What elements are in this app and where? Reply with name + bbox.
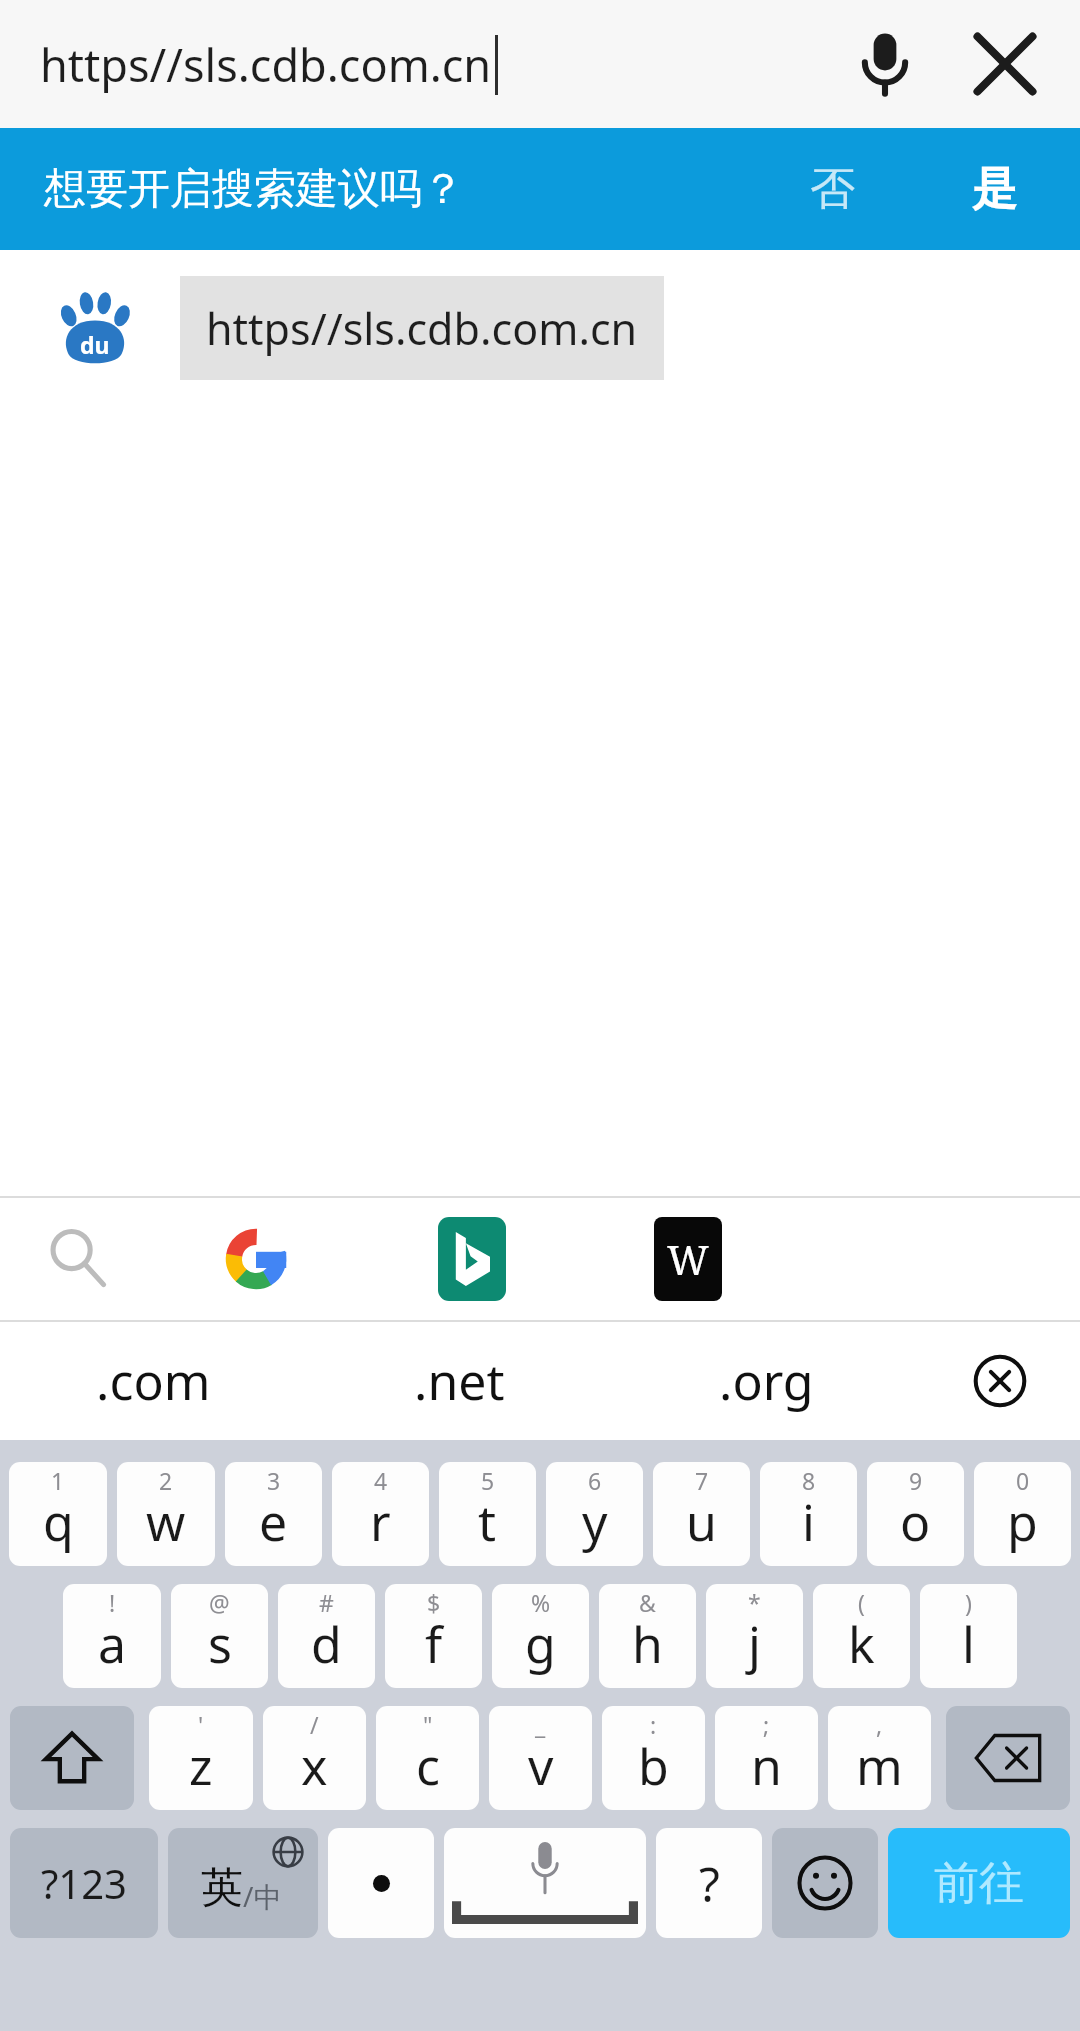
staticText: n [751, 1732, 782, 1800]
button[interactable]: du [0, 276, 1080, 380]
staticText: @ [209, 1587, 230, 1618]
staticText: e [259, 1488, 288, 1556]
button[interactable]: $ [385, 1584, 482, 1688]
staticText: https//sls.cdb.com.cn [40, 34, 492, 95]
staticText: .com [96, 1347, 211, 1415]
button[interactable]: @ [171, 1584, 268, 1688]
staticText: ' [198, 1709, 204, 1740]
button[interactable]: ? [656, 1828, 762, 1938]
button[interactable]: ; [715, 1706, 818, 1810]
button[interactable]: 6 [546, 1462, 643, 1566]
staticText: du [80, 329, 110, 360]
staticText: " [423, 1709, 433, 1740]
staticText: k [848, 1610, 875, 1678]
staticText: .net [414, 1347, 505, 1415]
staticText: 2 [159, 1465, 173, 1496]
button[interactable]: _ [489, 1706, 592, 1810]
staticText: : [650, 1709, 657, 1740]
button[interactable]: Period [328, 1828, 434, 1938]
button[interactable]: / [263, 1706, 366, 1810]
button[interactable]: .net [306, 1322, 613, 1440]
button[interactable]: & [599, 1584, 696, 1688]
staticText: ; [763, 1709, 770, 1740]
staticText: x [301, 1732, 328, 1800]
staticText: & [639, 1587, 656, 1618]
button[interactable]: , [828, 1706, 931, 1810]
staticText: 是 [972, 161, 1017, 218]
button[interactable]: ' [149, 1706, 253, 1810]
button[interactable]: ) [920, 1584, 1017, 1688]
staticText: 1 [51, 1465, 65, 1496]
staticText: 8 [802, 1465, 816, 1496]
staticText: m [856, 1732, 903, 1800]
staticText: 5 [481, 1465, 495, 1496]
button[interactable]: Wikipedia [634, 1205, 742, 1313]
staticText: s [208, 1610, 232, 1678]
button[interactable]: Close [956, 15, 1054, 113]
button[interactable]: " [376, 1706, 479, 1810]
button[interactable]: 0 [974, 1462, 1071, 1566]
button[interactable]: Backspace [946, 1706, 1070, 1810]
staticText: $ [427, 1587, 441, 1618]
staticText: 3 [267, 1465, 281, 1496]
staticText: ) [965, 1587, 972, 1618]
button[interactable]: Google [202, 1205, 310, 1313]
staticText: g [525, 1610, 556, 1678]
button[interactable]: ?123 [10, 1828, 158, 1938]
button[interactable]: 4 [332, 1462, 429, 1566]
staticText: c [416, 1732, 440, 1800]
button[interactable]: Voice search [836, 15, 934, 113]
staticText: b [638, 1732, 669, 1800]
button[interactable]: 7 [653, 1462, 750, 1566]
button[interactable]: 8 [760, 1462, 857, 1566]
button[interactable]: 1 [9, 1462, 107, 1566]
staticText: j [748, 1610, 761, 1678]
button[interactable]: Bing [418, 1205, 526, 1313]
button[interactable]: ! [63, 1584, 161, 1688]
staticText: * [748, 1587, 761, 1618]
button[interactable]: 是 [908, 128, 1080, 250]
staticText: 0 [1016, 1465, 1030, 1496]
button[interactable]: 3 [225, 1462, 322, 1566]
staticText: 7 [695, 1465, 709, 1496]
button[interactable]: 5 [439, 1462, 536, 1566]
button[interactable]: Shift [10, 1706, 134, 1810]
button[interactable]: 否 [756, 128, 908, 250]
staticText: t [478, 1488, 497, 1556]
staticText: i [802, 1488, 815, 1556]
staticText: ? [699, 1851, 720, 1916]
staticText: .org [719, 1347, 814, 1415]
staticText: u [686, 1488, 717, 1556]
button[interactable]: # [278, 1584, 375, 1688]
staticText: f [425, 1610, 443, 1678]
button[interactable]: .com [0, 1322, 306, 1440]
staticText: h [632, 1610, 663, 1678]
button[interactable]: Clear text [920, 1322, 1080, 1440]
button[interactable]: 前往 [888, 1828, 1070, 1938]
button[interactable]: Switch language [168, 1828, 318, 1938]
staticText: # [319, 1587, 334, 1618]
staticText: p [1007, 1488, 1038, 1556]
button[interactable]: : [602, 1706, 705, 1810]
staticText: ?123 [41, 1856, 127, 1910]
button[interactable]: 9 [867, 1462, 964, 1566]
staticText: 6 [588, 1465, 602, 1496]
button[interactable]: ( [813, 1584, 910, 1688]
button[interactable]: Emoji [772, 1828, 878, 1938]
staticText: d [311, 1610, 342, 1678]
staticText: % [531, 1587, 551, 1618]
staticText: 否 [810, 161, 855, 218]
button[interactable]: 2 [117, 1462, 215, 1566]
staticText: 前往 [934, 1855, 1024, 1912]
staticText: q [43, 1488, 74, 1556]
staticText: l [962, 1610, 975, 1678]
button[interactable]: * [706, 1584, 803, 1688]
button[interactable]: Space [444, 1828, 646, 1938]
staticText: a [98, 1610, 127, 1678]
button[interactable]: Search [24, 1205, 132, 1313]
staticText: https//sls.cdb.com.cn [206, 299, 638, 358]
button[interactable]: % [492, 1584, 589, 1688]
staticText: ! [109, 1587, 116, 1618]
staticText: /中 [243, 1877, 282, 1915]
button[interactable]: .org [613, 1322, 920, 1440]
